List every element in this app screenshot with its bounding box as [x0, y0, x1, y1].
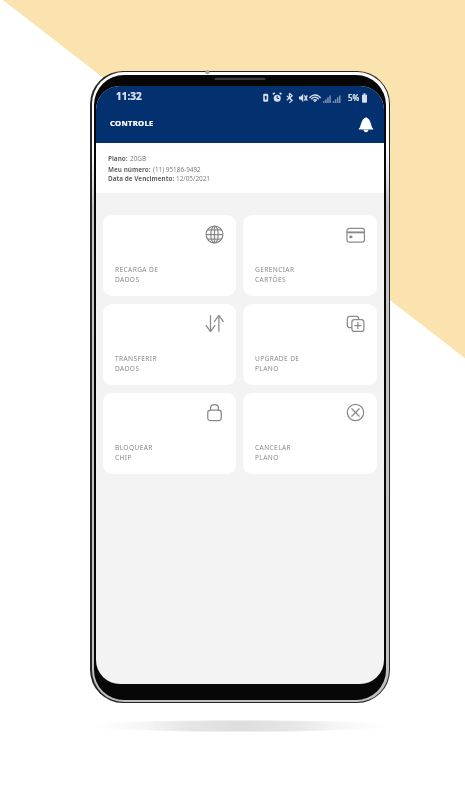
staticText: Data de Vencimento:: [108, 174, 176, 183]
staticText: 12/05/2021: [176, 174, 210, 183]
button[interactable]: UPGRADE DE PLANO: [243, 304, 377, 385]
staticText: RECARGA DE DADOS: [115, 265, 159, 284]
staticText: CANCELAR PLANO: [255, 443, 292, 462]
button[interactable]: TRANSFERIR DADOS: [103, 304, 236, 385]
button[interactable]: CANCELAR PLANO: [243, 393, 377, 474]
staticText: 20GB: [130, 154, 147, 163]
staticText: CONTROLE: [110, 118, 154, 128]
button[interactable]: GERENCIAR CARTÕES: [243, 215, 377, 296]
staticText: 5%: [348, 92, 360, 103]
button[interactable]: RECARGA DE DADOS: [103, 215, 236, 296]
staticText: Plano:: [108, 154, 130, 163]
staticText: BLOQUEAR CHIP: [115, 443, 153, 462]
staticText: 11:32: [116, 89, 142, 103]
staticText: (11) 95186-9492: [153, 165, 201, 174]
staticText: UPGRADE DE PLANO: [255, 354, 300, 373]
staticText: GERENCIAR CARTÕES: [255, 265, 295, 284]
staticText: Meu número:: [108, 165, 153, 174]
button[interactable]: BLOQUEAR CHIP: [103, 393, 236, 474]
staticText: TRANSFERIR DADOS: [115, 354, 157, 373]
button[interactable]: Notifications: [354, 113, 378, 137]
